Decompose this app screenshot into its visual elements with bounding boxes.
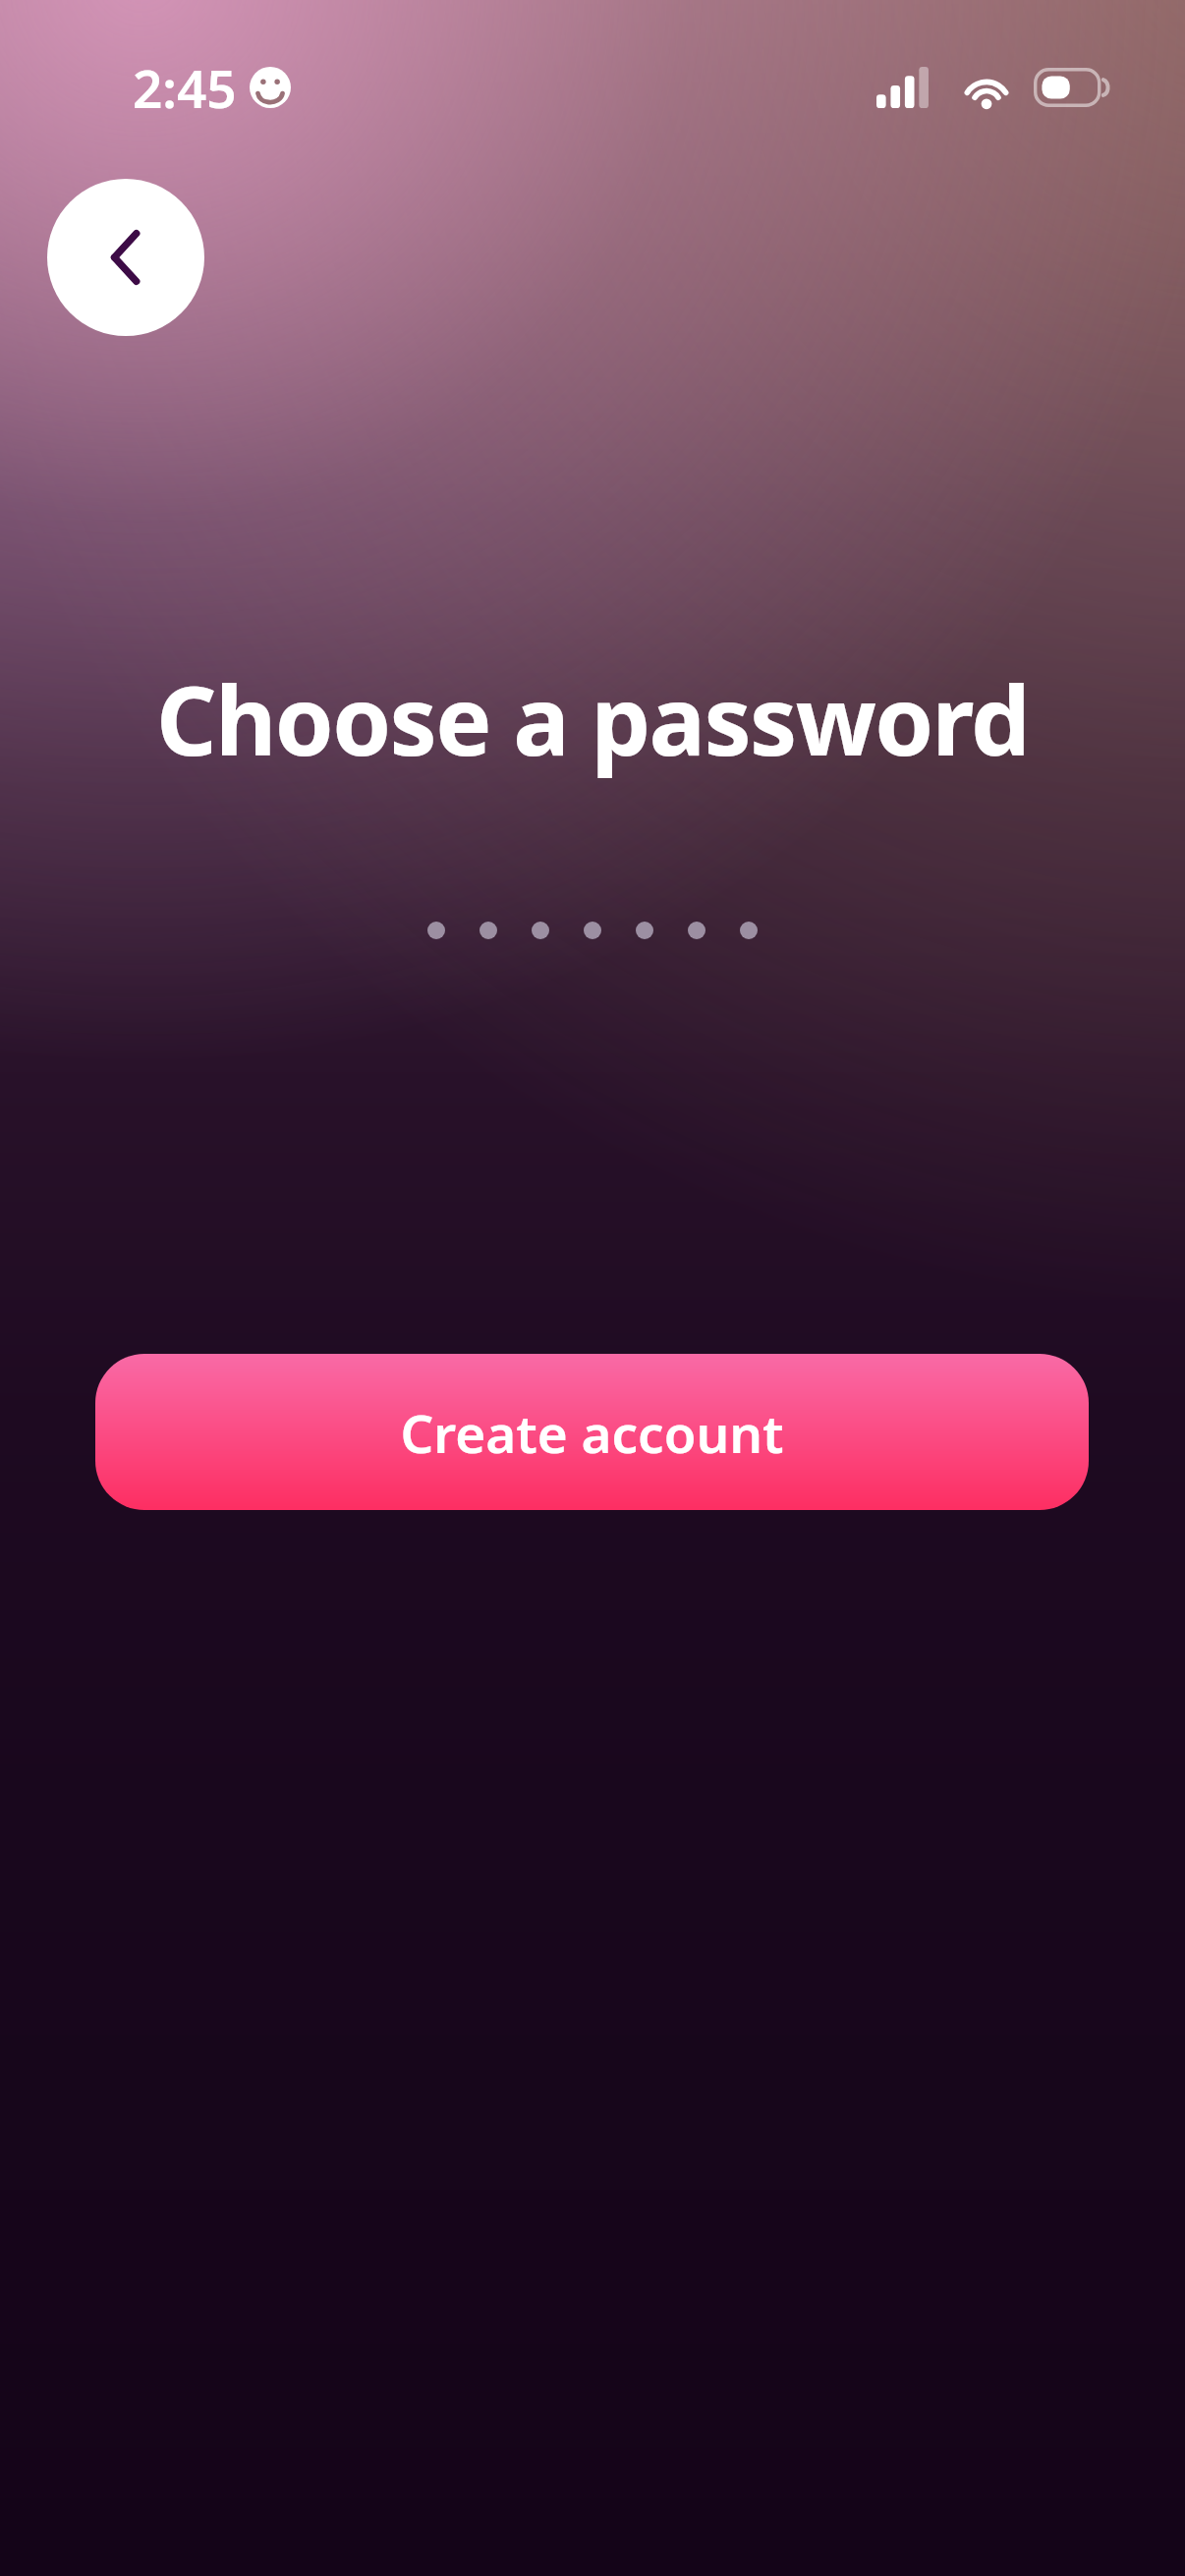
button[interactable]: Back: [47, 179, 204, 336]
staticText: Create account: [400, 1397, 784, 1468]
staticText: 2:45: [133, 52, 237, 123]
button[interactable]: Create account: [95, 1354, 1089, 1510]
staticText: Choose a password: [0, 654, 1185, 783]
